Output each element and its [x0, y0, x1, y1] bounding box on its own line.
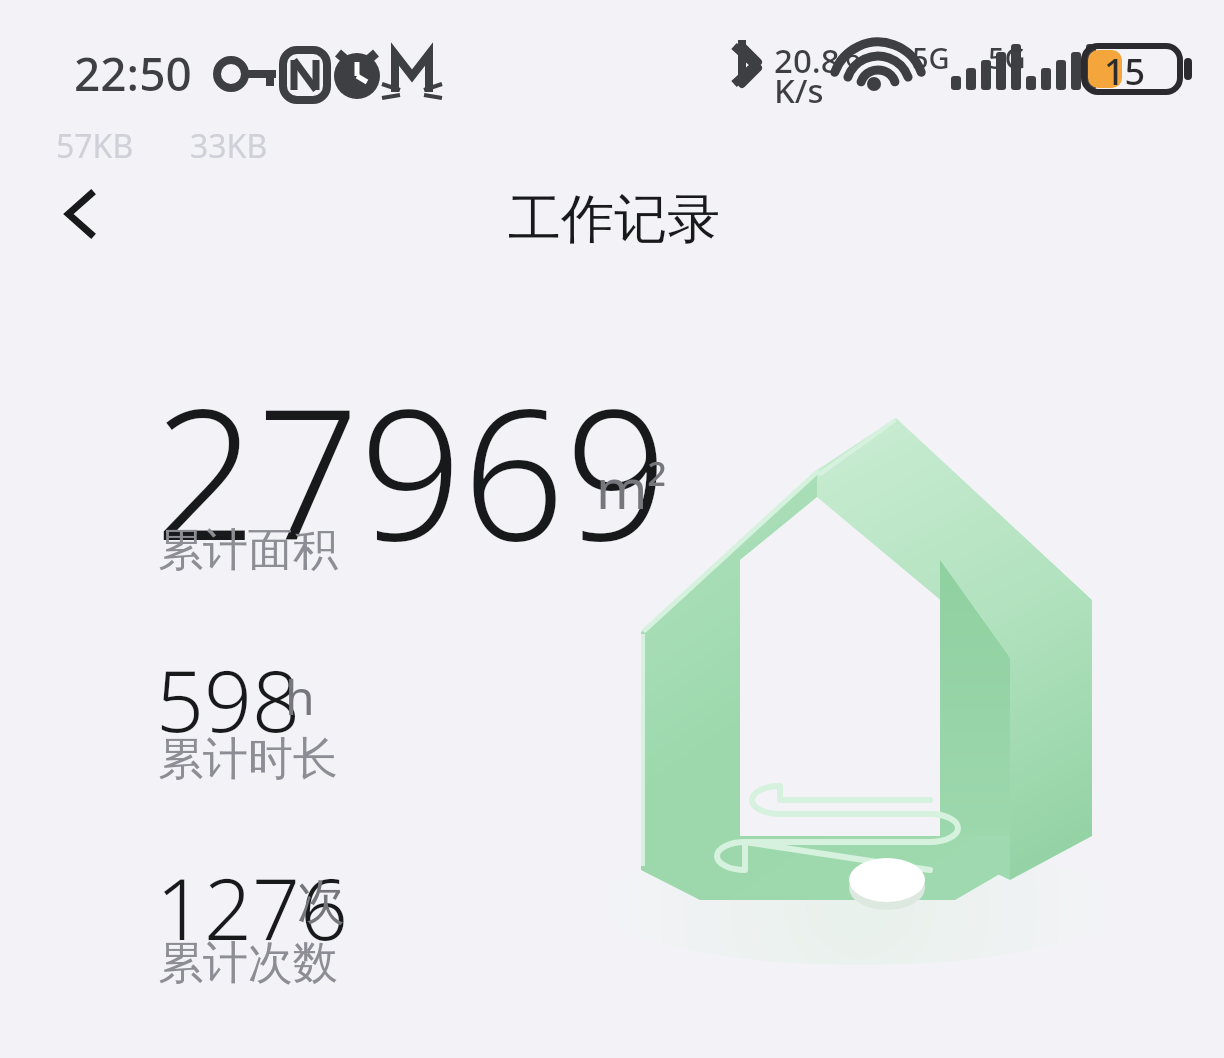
staticText: 20.8 — [774, 38, 840, 83]
staticText: 22:50 — [74, 42, 192, 105]
staticText: 5G — [912, 38, 950, 77]
staticText: 次 — [297, 872, 345, 932]
staticText: 15 — [1104, 47, 1146, 96]
staticText: h — [285, 664, 315, 729]
staticText: 累计时长 — [158, 731, 338, 788]
staticText: 27969 — [154, 348, 668, 593]
staticText: K/s — [774, 68, 824, 113]
staticText: 6 — [845, 38, 861, 75]
staticText: 57KB — [56, 124, 134, 168]
button[interactable]: Back — [46, 180, 114, 248]
staticText: 累计面积 — [158, 522, 338, 579]
staticText: 1276 — [156, 850, 348, 964]
staticText: 598 — [156, 642, 300, 756]
staticText: m² — [596, 450, 667, 525]
staticText: 33KB — [190, 124, 268, 168]
staticText: 工作记录 — [508, 186, 720, 253]
staticText: 累计次数 — [158, 935, 338, 992]
staticText: 5G — [988, 38, 1026, 77]
